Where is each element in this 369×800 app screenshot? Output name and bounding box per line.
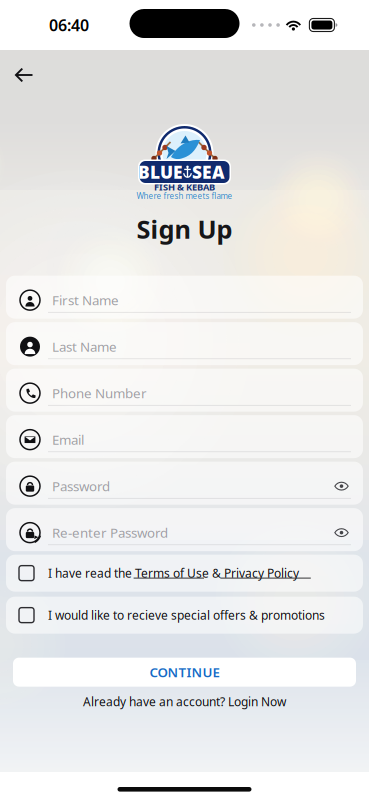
staticText: SEA [192,160,225,183]
staticText: Last Name [52,338,117,355]
button[interactable]: Already have an account? Login Now [83,694,286,709]
staticText: CONTINUE [149,663,219,681]
button[interactable]: I have read the Terms of Use & Privacy P… [6,555,363,592]
staticText: I have read the Terms of Use & Privacy P… [48,565,299,581]
staticText: Phone Number [52,384,147,402]
staticText: Sign Up [136,212,232,246]
staticText: First Name [52,291,119,309]
staticText: I would like to recieve special offers &… [48,607,325,623]
button[interactable]: Back [0,58,45,92]
staticText: Email [52,431,84,448]
staticText: 06:40 [49,14,89,36]
staticText: BLUE [138,160,183,183]
staticText: Where fresh meets flame [136,191,232,201]
staticText: Re-enter Password [52,524,168,541]
staticText: Already have an account? Login Now [83,694,286,709]
button[interactable]: CONTINUE [13,658,356,687]
staticText: FISH & KEBAB [154,181,215,193]
button[interactable]: I would like to recieve special offers &… [6,597,363,634]
staticText: Password [52,477,110,495]
